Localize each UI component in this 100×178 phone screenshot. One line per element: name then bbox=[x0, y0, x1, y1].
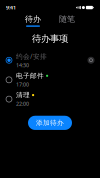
staticText: 14:30 bbox=[16, 62, 29, 69]
button[interactable]: Mark 清理 complete bbox=[4, 94, 14, 104]
button[interactable]: Mark 约会/安排 incomplete bbox=[4, 55, 14, 65]
staticText: 17:00 bbox=[16, 81, 29, 88]
button[interactable]: 清理 bbox=[14, 91, 86, 107]
staticText: 待办 bbox=[25, 14, 41, 24]
button[interactable]: 添加待办 bbox=[28, 116, 72, 130]
button[interactable]: 约会/安排 bbox=[14, 52, 86, 69]
button[interactable]: 电子邮件 bbox=[14, 72, 86, 88]
button[interactable]: 随笔 bbox=[57, 14, 77, 27]
staticText: 待办事项 bbox=[32, 33, 68, 44]
staticText: 添加待办 bbox=[36, 119, 64, 127]
staticText: 电子邮件 bbox=[16, 72, 44, 80]
button[interactable]: 待办 bbox=[23, 14, 43, 27]
button[interactable]: Settings bbox=[86, 55, 96, 65]
button[interactable]: Mark 电子邮件 complete bbox=[4, 75, 14, 85]
staticText: 9:41 bbox=[6, 4, 16, 11]
staticText: 22:00 bbox=[16, 100, 29, 107]
staticText: 随笔 bbox=[59, 14, 75, 24]
staticText: 约会/安排 bbox=[16, 52, 47, 61]
staticText: 清理 bbox=[16, 91, 30, 99]
